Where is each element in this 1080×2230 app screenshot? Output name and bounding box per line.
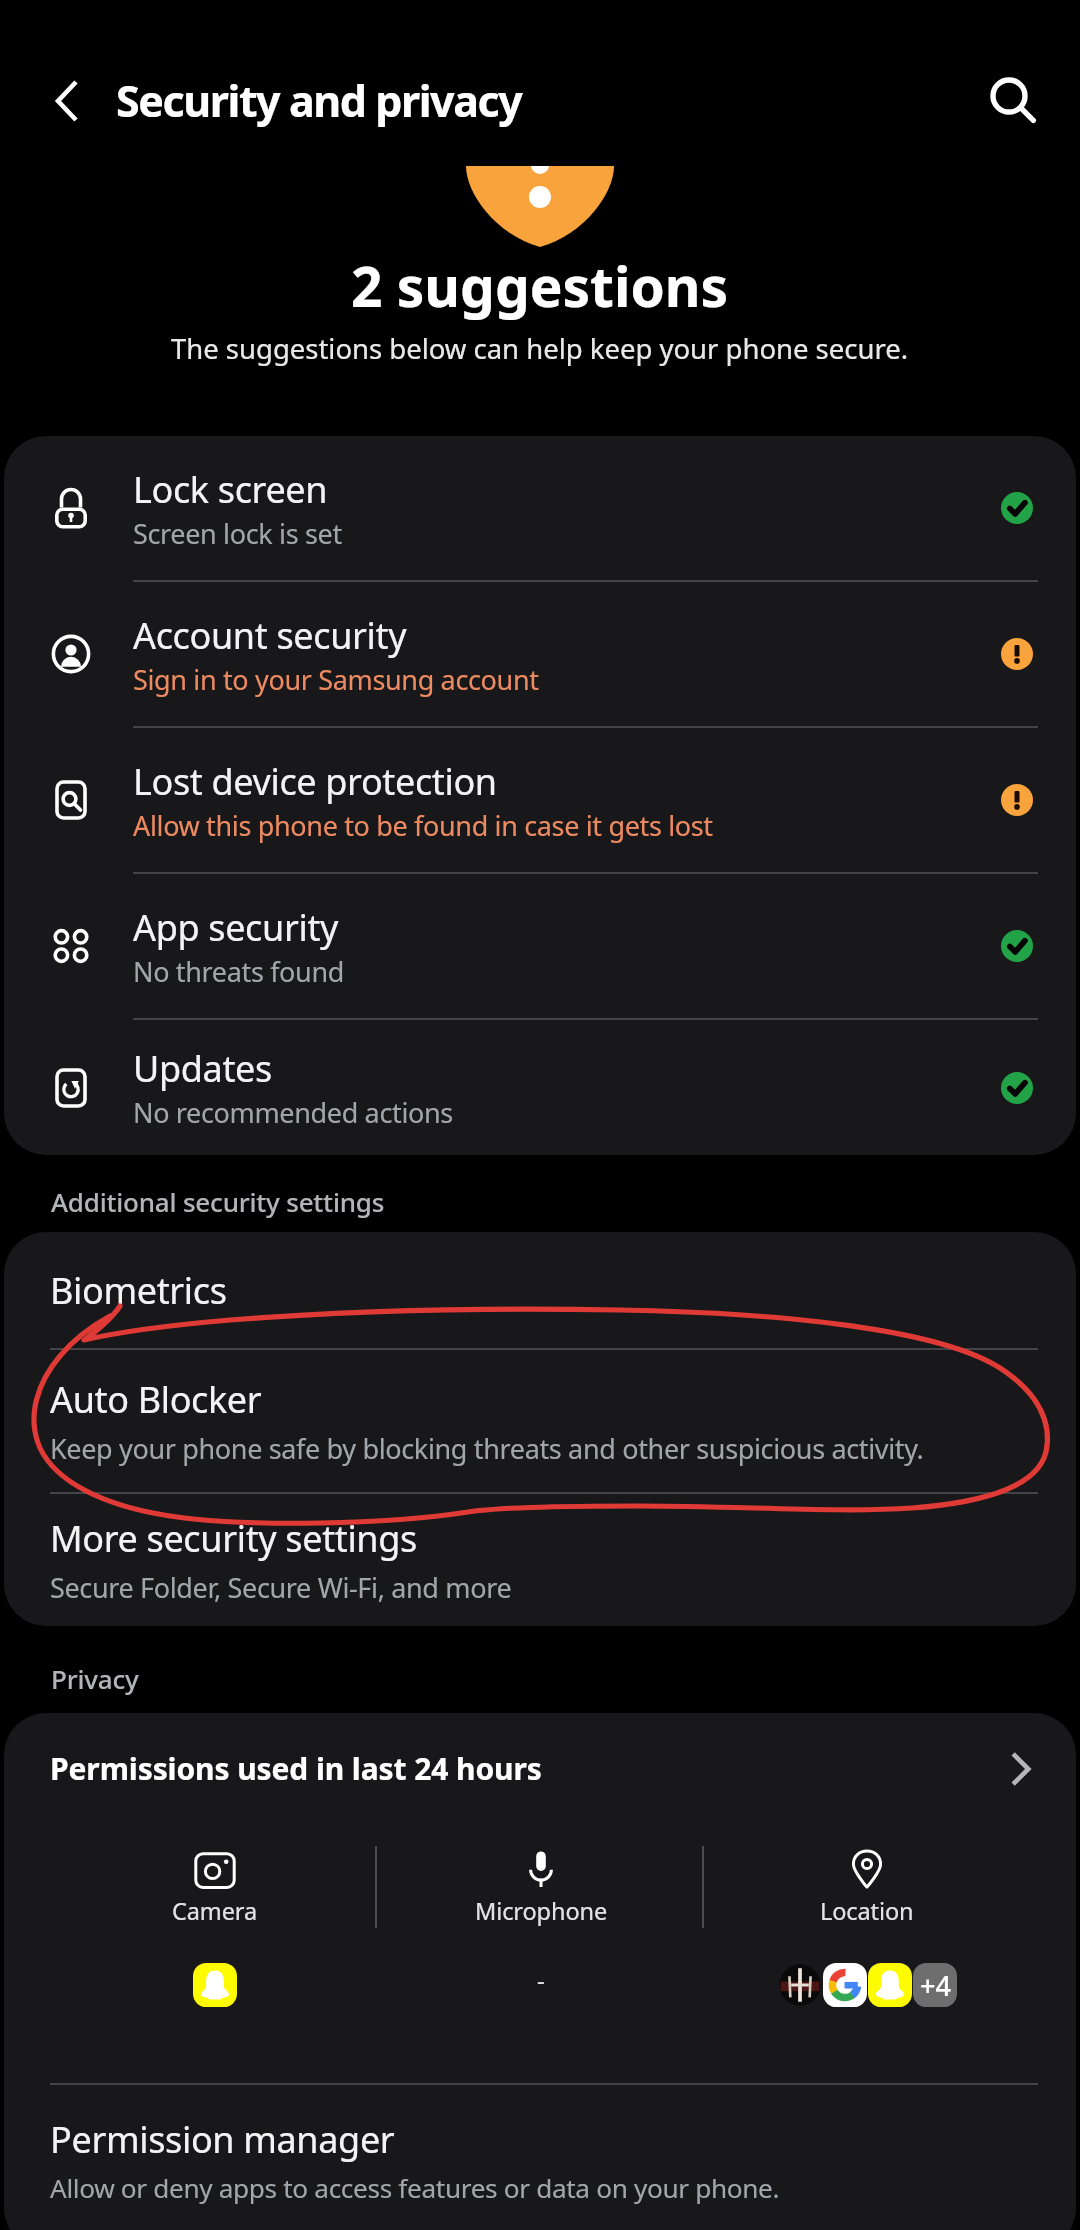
button[interactable]: Lock screen: [4, 436, 1076, 580]
staticText: App security: [133, 903, 339, 952]
staticText: Sign in to your Samsung account: [133, 661, 539, 698]
button[interactable]: Biometrics: [4, 1232, 1076, 1348]
staticText: Permission manager: [50, 2115, 395, 2164]
button[interactable]: Permission manager: [4, 2085, 1076, 2230]
button[interactable]: Lost device protection: [4, 728, 1076, 872]
button[interactable]: App security: [4, 874, 1076, 1018]
staticText: Allow or deny apps to access features or…: [50, 2170, 780, 2206]
staticText: Microphone: [475, 1895, 608, 1927]
staticText: -: [537, 1963, 545, 1996]
staticText: Security and privacy: [116, 71, 522, 130]
staticText: Lock screen: [133, 465, 328, 514]
button[interactable]: Search: [962, 51, 1054, 143]
staticText: Auto Blocker: [50, 1375, 262, 1424]
staticText: Camera: [172, 1895, 258, 1927]
staticText: More security settings: [50, 1514, 417, 1563]
button[interactable]: Updates: [4, 1020, 1076, 1155]
staticText: Screen lock is set: [133, 515, 342, 552]
staticText: No recommended actions: [133, 1094, 453, 1131]
button[interactable]: Navigate up: [22, 56, 110, 144]
staticText: Privacy: [51, 1661, 139, 1696]
button[interactable]: More security settings: [4, 1494, 1076, 1626]
staticText: Allow this phone to be found in case it …: [133, 807, 713, 844]
staticText: Keep your phone safe by blocking threats…: [50, 1430, 924, 1467]
button[interactable]: Auto Blocker: [4, 1350, 1076, 1492]
staticText: +4: [920, 1967, 951, 2004]
staticText: Permissions used in last 24 hours: [50, 1748, 542, 1789]
button[interactable]: Permissions used in last 24 hours: [4, 1713, 1076, 1820]
staticText: Updates: [133, 1044, 272, 1093]
button[interactable]: Account security: [4, 582, 1076, 726]
staticText: The suggestions below can help keep your…: [171, 330, 909, 367]
staticText: Account security: [133, 611, 407, 660]
staticText: No threats found: [133, 953, 344, 990]
staticText: Additional security settings: [51, 1184, 385, 1219]
staticText: Biometrics: [50, 1266, 227, 1315]
staticText: Lost device protection: [133, 757, 497, 806]
staticText: Secure Folder, Secure Wi-Fi, and more: [50, 1569, 512, 1606]
staticText: 2 suggestions: [351, 248, 729, 323]
staticText: Location: [820, 1895, 914, 1927]
